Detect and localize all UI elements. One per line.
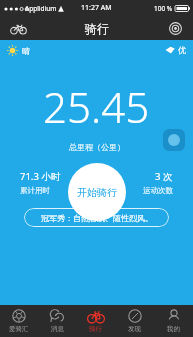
staticText: 晴 xyxy=(22,46,30,56)
button[interactable]: 71.3 小时 xyxy=(20,170,96,195)
staticText: 25.45 xyxy=(43,78,150,135)
staticText: 发现 xyxy=(128,325,141,333)
button[interactable]: 爱骑汇 xyxy=(0,305,38,337)
button[interactable]: 发现 xyxy=(115,305,154,337)
staticText: 总里程（公里） xyxy=(69,142,125,152)
staticText: Applidium xyxy=(25,4,57,13)
button[interactable]: Settings xyxy=(165,18,185,38)
staticText: 累计用时 xyxy=(20,186,50,195)
button[interactable]: 开始骑行 xyxy=(68,163,126,221)
staticText: 骑行 xyxy=(85,21,109,36)
staticText: 优 xyxy=(178,45,186,55)
staticText: 开始骑行 xyxy=(77,186,117,199)
button[interactable]: Cycling history xyxy=(8,18,28,38)
staticText: 我的 xyxy=(167,325,180,333)
staticText: 运动次数 xyxy=(143,186,173,195)
button[interactable]: 骑行 xyxy=(76,305,115,337)
button[interactable]: 冠军秀：自然洒脱、随性烈风。 xyxy=(24,208,169,227)
staticText: 71.3 小时 xyxy=(20,170,61,183)
staticText: 3 次 xyxy=(155,170,173,183)
staticText: 爱骑汇 xyxy=(9,325,29,333)
button[interactable]: 我的 xyxy=(154,305,193,337)
button[interactable]: 3 次 xyxy=(96,170,173,195)
button[interactable]: 优 xyxy=(165,45,186,55)
staticText: 100 % xyxy=(154,4,173,13)
staticText: 骑行 xyxy=(89,325,102,333)
button[interactable]: 晴 xyxy=(7,45,30,56)
button[interactable]: More xyxy=(163,129,185,151)
staticText: 11:27 AM xyxy=(81,3,112,13)
button[interactable]: 消息 xyxy=(38,305,76,337)
staticText: 冠军秀：自然洒脱、随性烈风。 xyxy=(41,213,153,223)
staticText: 消息 xyxy=(51,325,64,333)
